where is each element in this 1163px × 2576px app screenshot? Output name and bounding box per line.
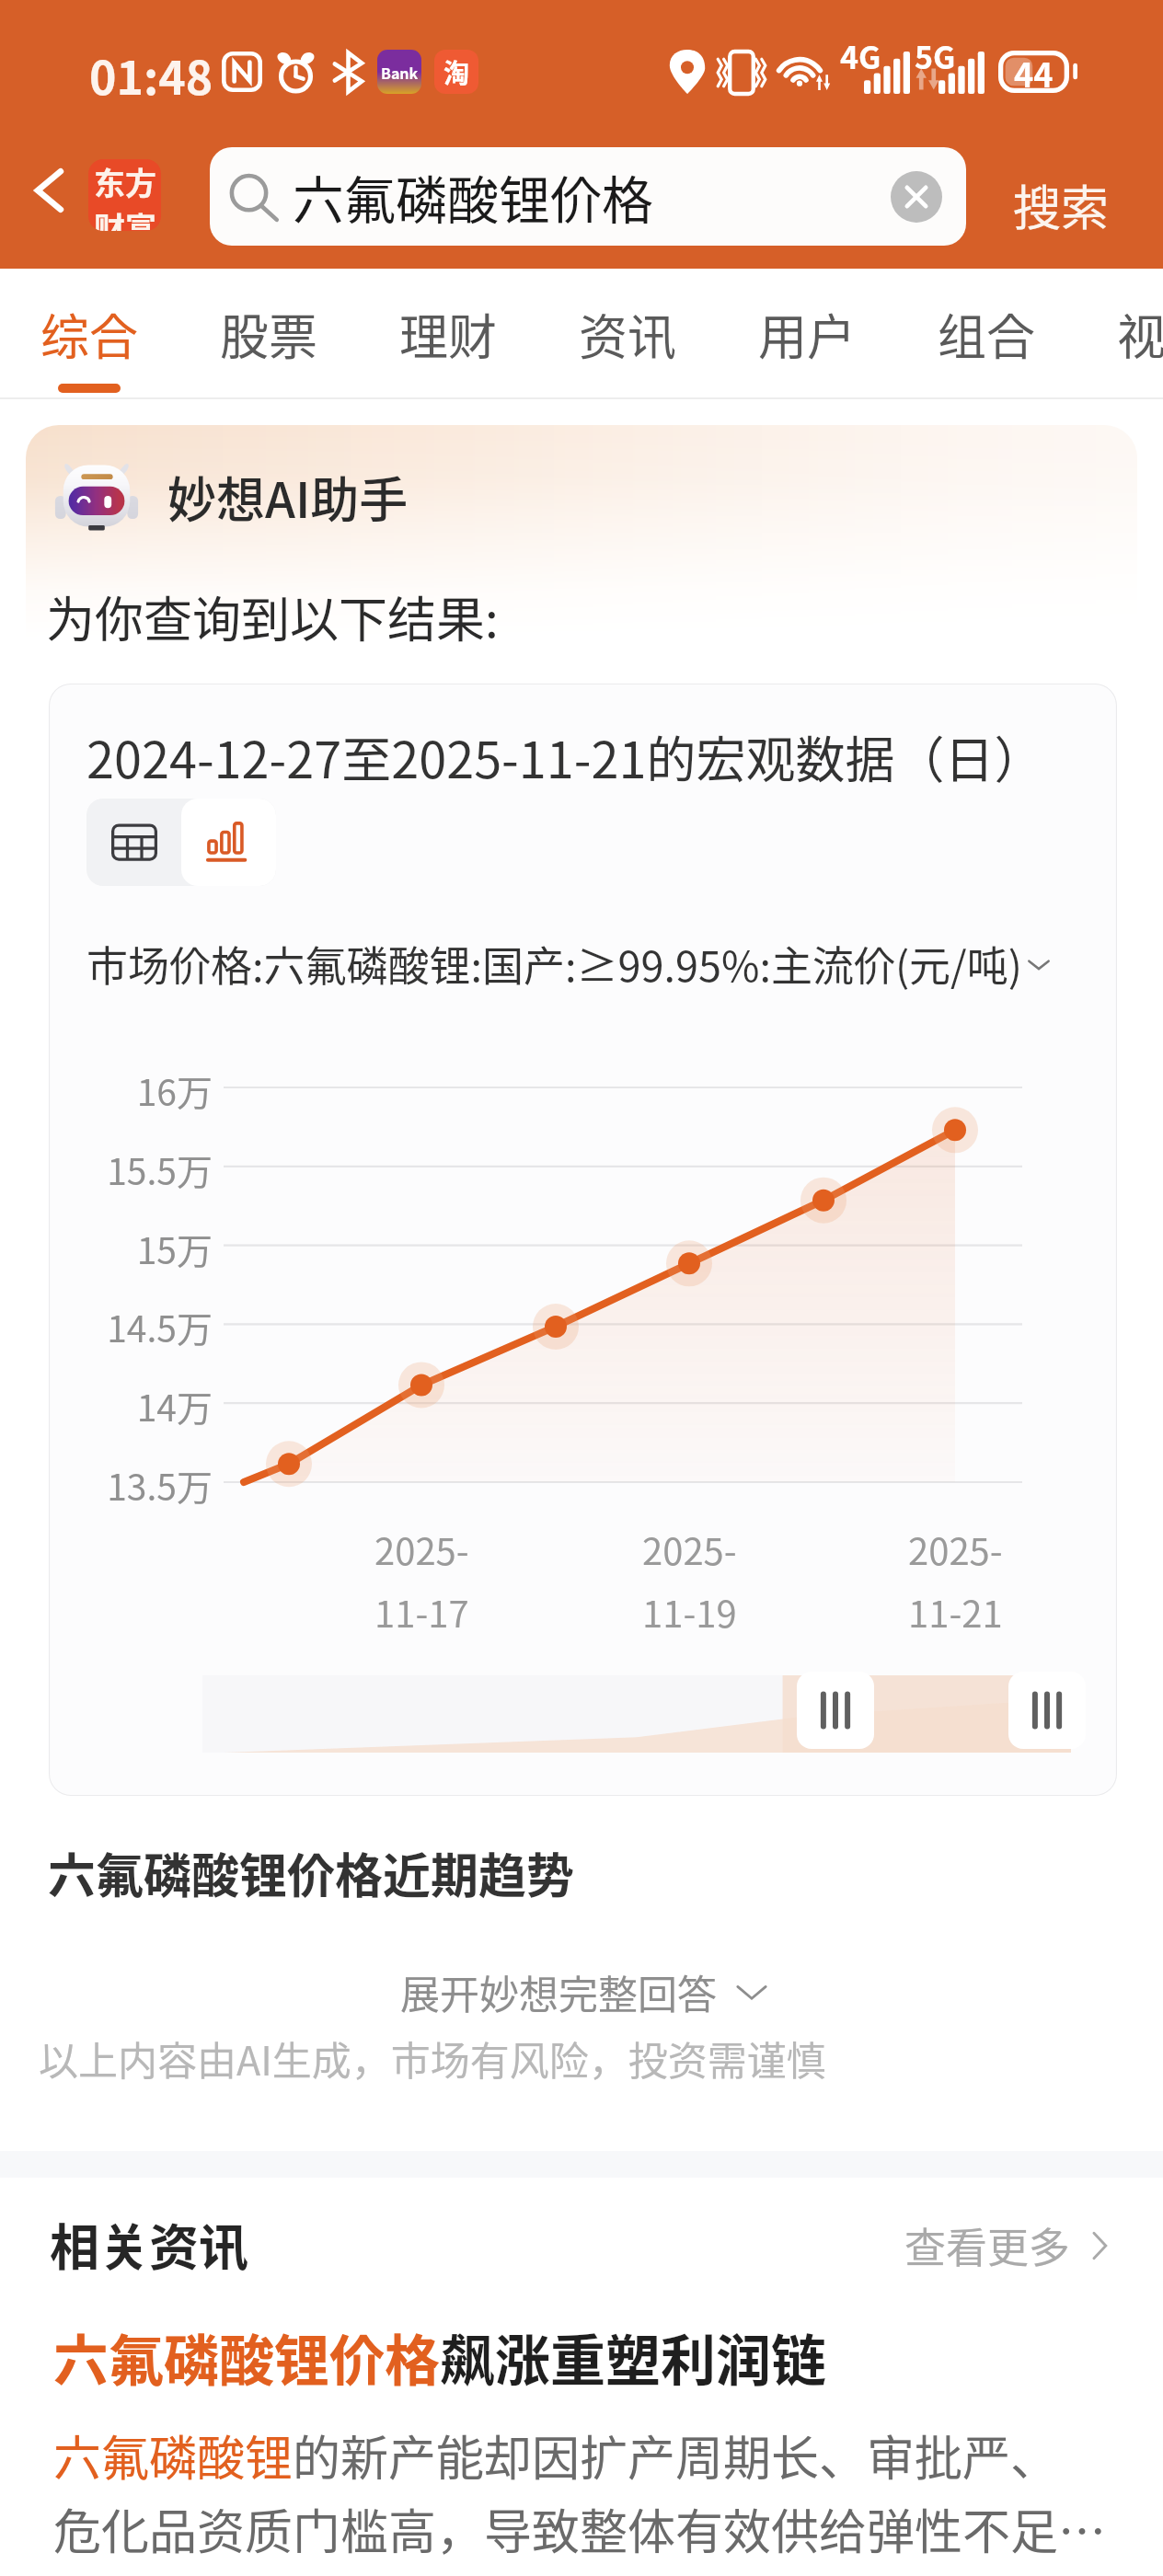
button[interactable]: Back <box>15 156 83 224</box>
staticText: 查看更多 <box>904 2215 1071 2275</box>
staticText: 搜索 <box>1013 170 1110 239</box>
button[interactable]: 市场价格:六氟磷酸锂:国产:≥99.95%:主流价(元/吨) <box>86 934 1052 994</box>
staticText: 2025- <box>374 1523 469 1576</box>
staticText: 为你查询到以下结果: <box>46 581 499 652</box>
button[interactable]: 六氟磷酸锂价格 <box>210 147 966 246</box>
button[interactable]: Chart view <box>181 799 276 886</box>
staticText: 4G <box>840 33 881 78</box>
staticText: 综合 <box>40 299 138 370</box>
staticText: 16万 <box>49 1064 213 1116</box>
staticText: 淘 <box>443 53 470 91</box>
staticText: 组合 <box>938 299 1035 370</box>
staticText: 用户 <box>758 299 856 370</box>
staticText: Bank <box>381 62 419 83</box>
staticText: 妙想AI助手 <box>167 462 409 533</box>
staticText: 相关资讯 <box>50 2208 248 2280</box>
staticText: 11-19 <box>642 1585 737 1639</box>
button[interactable]: Range handle <box>1008 1672 1086 1749</box>
staticText: 展开妙想完整回答 <box>400 1963 717 2020</box>
button[interactable]: 查看更多 <box>899 2210 1123 2281</box>
staticText: 以上内容由AI生成，市场有风险，投资需谨慎 <box>39 2030 826 2087</box>
staticText: 六氟磷酸锂价格 <box>293 159 653 234</box>
staticText: 44 <box>1014 49 1054 91</box>
button[interactable]: Table view <box>86 799 181 886</box>
staticText: 13.5万 <box>49 1459 213 1511</box>
staticText: 15万 <box>49 1223 213 1274</box>
button[interactable]: 理财 <box>370 269 526 397</box>
staticText: 财富 <box>94 204 156 231</box>
staticText: 六氟磷酸锂的新产能却因扩产周期长、审批严、 危化品资质门槛高，导致整体有效供给弹… <box>53 2421 1107 2563</box>
staticText: 14万 <box>49 1380 213 1432</box>
staticText: 2024-12-27至2025-11-21的宏观数据（日） <box>86 720 1044 792</box>
staticText: 资讯 <box>579 299 676 370</box>
button[interactable]: 股票 <box>190 269 347 397</box>
button[interactable]: 六氟磷酸锂价格飙涨重塑利润链 <box>53 2317 1121 2563</box>
staticText: 股票 <box>220 299 317 370</box>
staticText: 市场价格:六氟磷酸锂:国产:≥99.95%:主流价(元/吨) <box>86 934 1022 994</box>
staticText: 东方 <box>94 159 156 204</box>
staticText: 5G <box>915 33 956 78</box>
button[interactable]: 展开妙想完整回答 <box>389 1956 781 2028</box>
button[interactable]: 视频 <box>1088 269 1163 397</box>
staticText: 01:48 <box>89 41 213 108</box>
staticText: 14.5万 <box>49 1301 213 1352</box>
staticText: 11-17 <box>374 1585 469 1639</box>
staticText: 2025- <box>908 1523 1003 1576</box>
staticText: 2025- <box>642 1523 737 1576</box>
button[interactable]: 用户 <box>729 269 885 397</box>
staticText: 六氟磷酸锂价格近期趋势 <box>48 1838 575 1907</box>
button[interactable]: Clear search <box>891 171 942 223</box>
button[interactable]: Range handle <box>797 1672 874 1749</box>
button[interactable]: 组合 <box>908 269 1065 397</box>
staticText: 15.5万 <box>49 1144 213 1195</box>
staticText: 六氟磷酸锂价格飙涨重塑利润链 <box>53 2317 826 2397</box>
staticText: 视频 <box>1117 299 1163 370</box>
staticText: 11-21 <box>908 1585 1003 1639</box>
button[interactable]: 综合 <box>11 269 167 397</box>
button[interactable]: 资讯 <box>549 269 706 397</box>
button[interactable]: East Money <box>88 159 161 231</box>
staticText: 理财 <box>399 299 497 370</box>
button[interactable]: 搜索 <box>1006 163 1117 247</box>
